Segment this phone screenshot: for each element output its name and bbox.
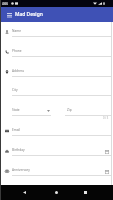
button[interactable]: Name — [0, 22, 113, 42]
staticText: Name — [12, 29, 21, 33]
staticText: Address — [12, 69, 25, 73]
staticText: City — [12, 88, 18, 92]
staticText: Anniversary — [12, 168, 30, 172]
button[interactable]: Address — [0, 62, 113, 82]
button[interactable]: Open navigation drawer — [4, 10, 14, 20]
button[interactable]: Phone — [0, 42, 113, 62]
staticText: State — [12, 108, 20, 112]
button[interactable]: Home — [49, 185, 64, 200]
button[interactable]: Recent apps — [78, 185, 93, 200]
button[interactable]: City — [0, 81, 113, 101]
staticText: Phone — [12, 49, 22, 53]
staticText: Email — [12, 128, 21, 132]
button[interactable]: Anniversary — [0, 161, 113, 181]
button[interactable]: State — [12, 101, 51, 115]
button[interactable]: Email — [0, 121, 113, 141]
button[interactable]: Back — [17, 185, 32, 200]
staticText: Zip — [67, 108, 72, 112]
button[interactable]: Pick a date — [102, 149, 111, 154]
button[interactable]: Pick a date — [102, 169, 111, 174]
staticText: Mad Design — [15, 11, 43, 18]
staticText: 0 / 5 — [103, 116, 109, 120]
staticText: 4:56 — [2, 2, 8, 6]
staticText: Birthday — [12, 148, 25, 152]
button[interactable]: Zip — [65, 101, 112, 115]
button[interactable]: Birthday — [0, 141, 113, 161]
